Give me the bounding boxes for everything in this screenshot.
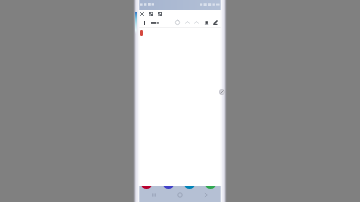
button[interactable] <box>141 178 152 189</box>
button[interactable] <box>163 178 174 189</box>
button[interactable]: Redo <box>193 19 200 26</box>
button[interactable]: Close <box>139 11 145 17</box>
button[interactable]: Edit note <box>219 89 225 95</box>
button[interactable]: Undo <box>184 19 191 26</box>
button[interactable] <box>184 178 195 189</box>
button[interactable]: Insert shape <box>157 11 163 17</box>
button[interactable]: Back <box>201 190 211 200</box>
button[interactable]: Home <box>175 190 185 200</box>
button[interactable]: Insert image <box>148 11 154 17</box>
button[interactable] <box>205 178 216 189</box>
button[interactable]: Recent apps <box>149 190 159 200</box>
button[interactable]: Rotate <box>174 19 181 26</box>
button[interactable]: Eraser <box>203 19 210 26</box>
button[interactable]: Pen <box>212 19 219 26</box>
button[interactable]: Pen <box>140 30 143 36</box>
